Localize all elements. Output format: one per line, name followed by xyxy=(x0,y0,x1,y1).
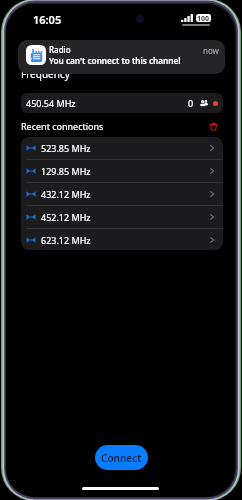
staticText: Radio xyxy=(49,44,71,55)
button[interactable]: 432.12 MHz xyxy=(21,183,223,205)
button[interactable]: Radio xyxy=(18,40,225,74)
staticText: You can't connect to this channel xyxy=(49,55,181,66)
button[interactable]: Delete recent connections xyxy=(207,120,220,133)
staticText: Connect xyxy=(101,451,142,465)
button[interactable]: 623.12 MHz xyxy=(21,229,223,250)
staticText: 100 xyxy=(197,14,210,22)
staticText: 450.54 MHz xyxy=(26,97,76,109)
button[interactable]: 450.54 MHz xyxy=(21,93,223,113)
button[interactable]: 523.85 MHz xyxy=(21,137,223,159)
staticText: 523.85 MHz xyxy=(41,142,91,154)
staticText: 452.12 MHz xyxy=(41,211,91,223)
staticText: Recent connections xyxy=(21,120,104,132)
button[interactable]: 129.85 MHz xyxy=(21,160,223,182)
staticText: now xyxy=(203,45,219,56)
staticText: 16:05 xyxy=(33,12,62,27)
staticText: Frequency xyxy=(21,67,70,81)
button[interactable]: 452.12 MHz xyxy=(21,206,223,228)
staticText: 623.12 MHz xyxy=(41,234,91,246)
button[interactable]: Connect xyxy=(95,445,148,470)
staticText: 0 xyxy=(188,97,194,109)
staticText: 432.12 MHz xyxy=(41,188,91,200)
staticText: 129.85 MHz xyxy=(41,165,91,177)
